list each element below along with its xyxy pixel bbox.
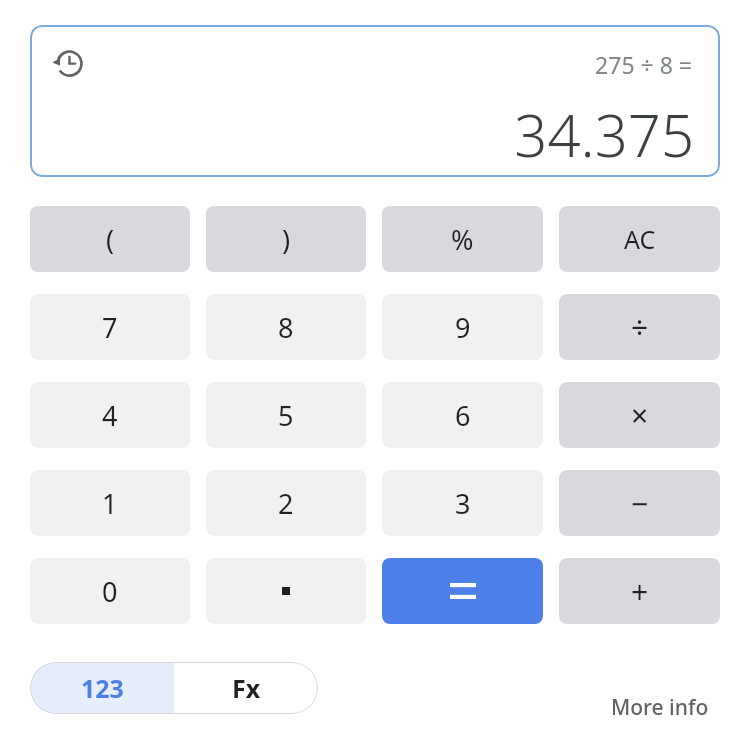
button[interactable]: Fx	[174, 662, 318, 714]
button[interactable]: %	[382, 206, 543, 272]
button[interactable]: AC	[559, 206, 720, 272]
button[interactable]: ×	[559, 382, 720, 448]
button[interactable]: )	[206, 206, 366, 272]
staticText: 2	[278, 485, 294, 522]
staticText: 7	[102, 309, 118, 346]
button[interactable]: 6	[382, 382, 543, 448]
button[interactable]: 9	[382, 294, 543, 360]
button[interactable]	[206, 558, 366, 624]
staticText: 8	[278, 309, 294, 346]
button[interactable]: 3	[382, 470, 543, 536]
button[interactable]: More info	[600, 686, 720, 728]
button[interactable]: 2	[206, 470, 366, 536]
staticText: 5	[278, 397, 294, 434]
staticText: 275 ÷ 8 =	[30, 49, 692, 80]
button[interactable]: 0	[30, 558, 190, 624]
staticText: AC	[624, 222, 656, 256]
button[interactable]: 123	[30, 662, 174, 714]
button[interactable]: −	[559, 470, 720, 536]
staticText: 123	[81, 671, 124, 705]
button[interactable]: 5	[206, 382, 366, 448]
button[interactable]: 1	[30, 470, 190, 536]
staticText: 4	[102, 397, 118, 434]
button[interactable]: 7	[30, 294, 190, 360]
staticText: %	[451, 221, 474, 258]
staticText: 1	[102, 485, 118, 522]
staticText: 0	[102, 573, 118, 610]
button[interactable]: +	[559, 558, 720, 624]
staticText: 9	[455, 309, 471, 346]
staticText: −	[631, 483, 649, 524]
staticText: Fx	[232, 671, 261, 705]
button[interactable]	[382, 558, 543, 624]
staticText: +	[631, 571, 649, 612]
button[interactable]: (	[30, 206, 190, 272]
button[interactable]: History	[44, 39, 92, 87]
staticText: More info	[611, 693, 709, 722]
staticText: 34.375	[30, 95, 694, 174]
button[interactable]: ÷	[559, 294, 720, 360]
staticText: )	[282, 221, 291, 258]
button[interactable]: 8	[206, 294, 366, 360]
staticText: 6	[455, 397, 471, 434]
staticText: 3	[455, 485, 471, 522]
staticText: (	[106, 221, 115, 258]
staticText: ×	[631, 395, 649, 436]
staticText: ÷	[631, 307, 649, 348]
button[interactable]: 4	[30, 382, 190, 448]
